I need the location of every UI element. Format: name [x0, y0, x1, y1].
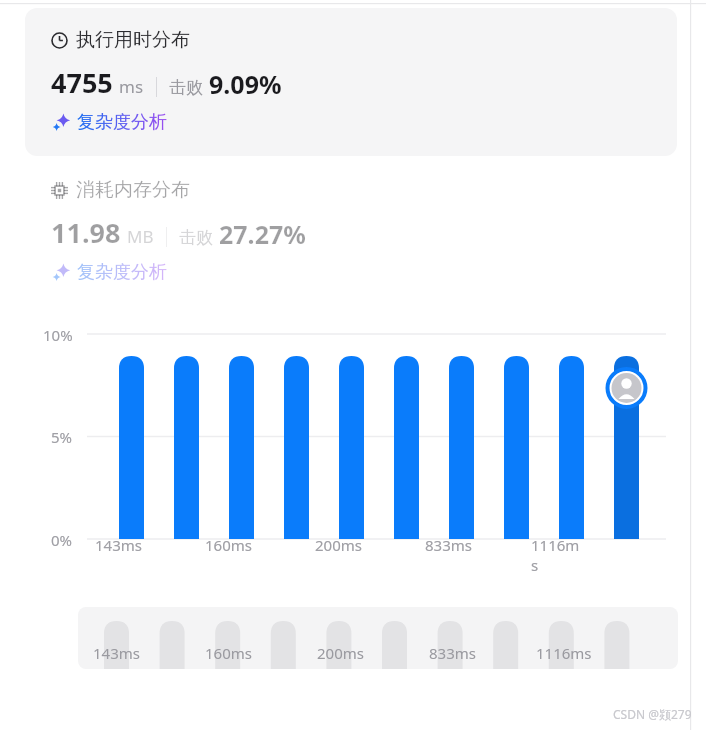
staticText: 160ms — [205, 535, 252, 555]
staticText: 200ms — [315, 535, 362, 555]
staticText: 11.98 — [51, 214, 121, 251]
staticText: 4755 — [51, 64, 113, 101]
staticText: ms — [119, 75, 144, 98]
button[interactable]: 执行用时分布 — [25, 8, 677, 156]
staticText: 27.27% — [219, 217, 306, 251]
staticText: 1116ms — [536, 643, 592, 663]
staticText: 消耗内存分布 — [76, 178, 190, 202]
staticText: 200ms — [317, 643, 364, 663]
staticText: 复杂度分析 — [77, 261, 167, 284]
staticText: MB — [127, 225, 154, 248]
staticText: 击败 — [169, 77, 203, 98]
staticText: 执行用时分布 — [76, 28, 190, 52]
button[interactable]: 复杂度分析 — [51, 261, 167, 284]
staticText: 1116ms — [531, 535, 586, 575]
staticText: CSDN @颎279 — [613, 706, 692, 722]
staticText: 833ms — [425, 535, 472, 555]
staticText: 9.09% — [209, 67, 282, 101]
staticText: 833ms — [429, 643, 476, 663]
button[interactable]: 复杂度分析 — [51, 111, 167, 134]
staticText: 击败 — [179, 227, 213, 248]
staticText: 143ms — [93, 643, 140, 663]
staticText: 复杂度分析 — [77, 111, 167, 134]
button[interactable]: Chart range selector — [78, 607, 678, 669]
staticText: 143ms — [95, 535, 142, 555]
staticText: 160ms — [205, 643, 252, 663]
staticText: 10% — [43, 325, 73, 345]
staticText: 0% — [51, 530, 73, 550]
staticText: 5% — [51, 427, 73, 447]
